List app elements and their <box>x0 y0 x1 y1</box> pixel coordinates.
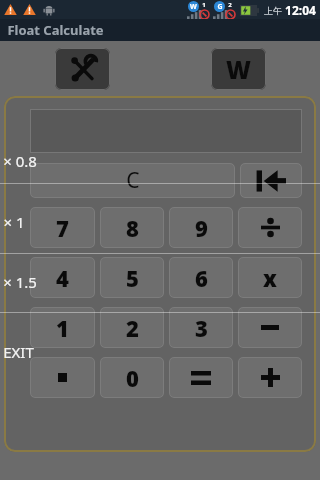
button[interactable]: 8 <box>100 206 164 250</box>
staticText: × 0.8 <box>3 151 37 171</box>
staticText: 2 <box>228 1 232 9</box>
staticText: C <box>126 166 140 195</box>
staticText: 9 <box>195 213 208 243</box>
button[interactable]: × 1.5 <box>3 271 61 293</box>
button[interactable] <box>30 109 302 153</box>
staticText: Float Calculate <box>7 21 104 39</box>
staticText: 5 <box>126 263 139 293</box>
staticText: 1 <box>56 313 69 343</box>
button[interactable]: 2 <box>100 306 164 350</box>
button[interactable]: 9 <box>169 206 233 250</box>
staticText: 1 <box>202 1 206 9</box>
button[interactable]: × 0.8 <box>3 150 61 172</box>
button[interactable]: 6 <box>169 256 233 300</box>
button[interactable]: Backspace <box>240 162 302 200</box>
button[interactable] <box>238 306 302 350</box>
button[interactable]: 1 <box>30 306 95 350</box>
button[interactable]: 5 <box>100 256 164 300</box>
button[interactable] <box>169 356 233 400</box>
button[interactable]: x <box>238 256 302 300</box>
button[interactable]: 4 <box>30 256 95 300</box>
staticText: 0 <box>126 363 139 393</box>
staticText: 8 <box>126 213 139 243</box>
button[interactable]: Float Calculate <box>0 19 320 41</box>
button[interactable] <box>238 356 302 400</box>
button[interactable]: EXIT <box>3 341 61 363</box>
staticText: 上午 <box>264 5 282 16</box>
staticText: W <box>226 53 251 86</box>
button[interactable]: W <box>211 48 266 90</box>
button[interactable]: C <box>30 162 235 200</box>
staticText: W <box>190 2 197 12</box>
staticText: x <box>263 263 277 293</box>
button[interactable] <box>238 206 302 250</box>
staticText: × 1 <box>3 212 25 232</box>
staticText: 7 <box>56 213 69 243</box>
button[interactable]: 0 <box>100 356 164 400</box>
button[interactable]: × 1 <box>3 211 61 233</box>
button[interactable]: 7 <box>30 206 95 250</box>
staticText: 3 <box>195 313 208 343</box>
button[interactable] <box>30 356 95 400</box>
staticText: 12:04 <box>285 2 316 18</box>
staticText: G <box>217 2 223 12</box>
staticText: 6 <box>195 263 208 293</box>
button[interactable]: 3 <box>169 306 233 350</box>
staticText: 2 <box>126 313 139 343</box>
button[interactable]: Settings <box>55 48 110 90</box>
staticText: 4 <box>56 263 69 293</box>
staticText: × 1.5 <box>3 272 37 292</box>
staticText: EXIT <box>3 342 34 362</box>
